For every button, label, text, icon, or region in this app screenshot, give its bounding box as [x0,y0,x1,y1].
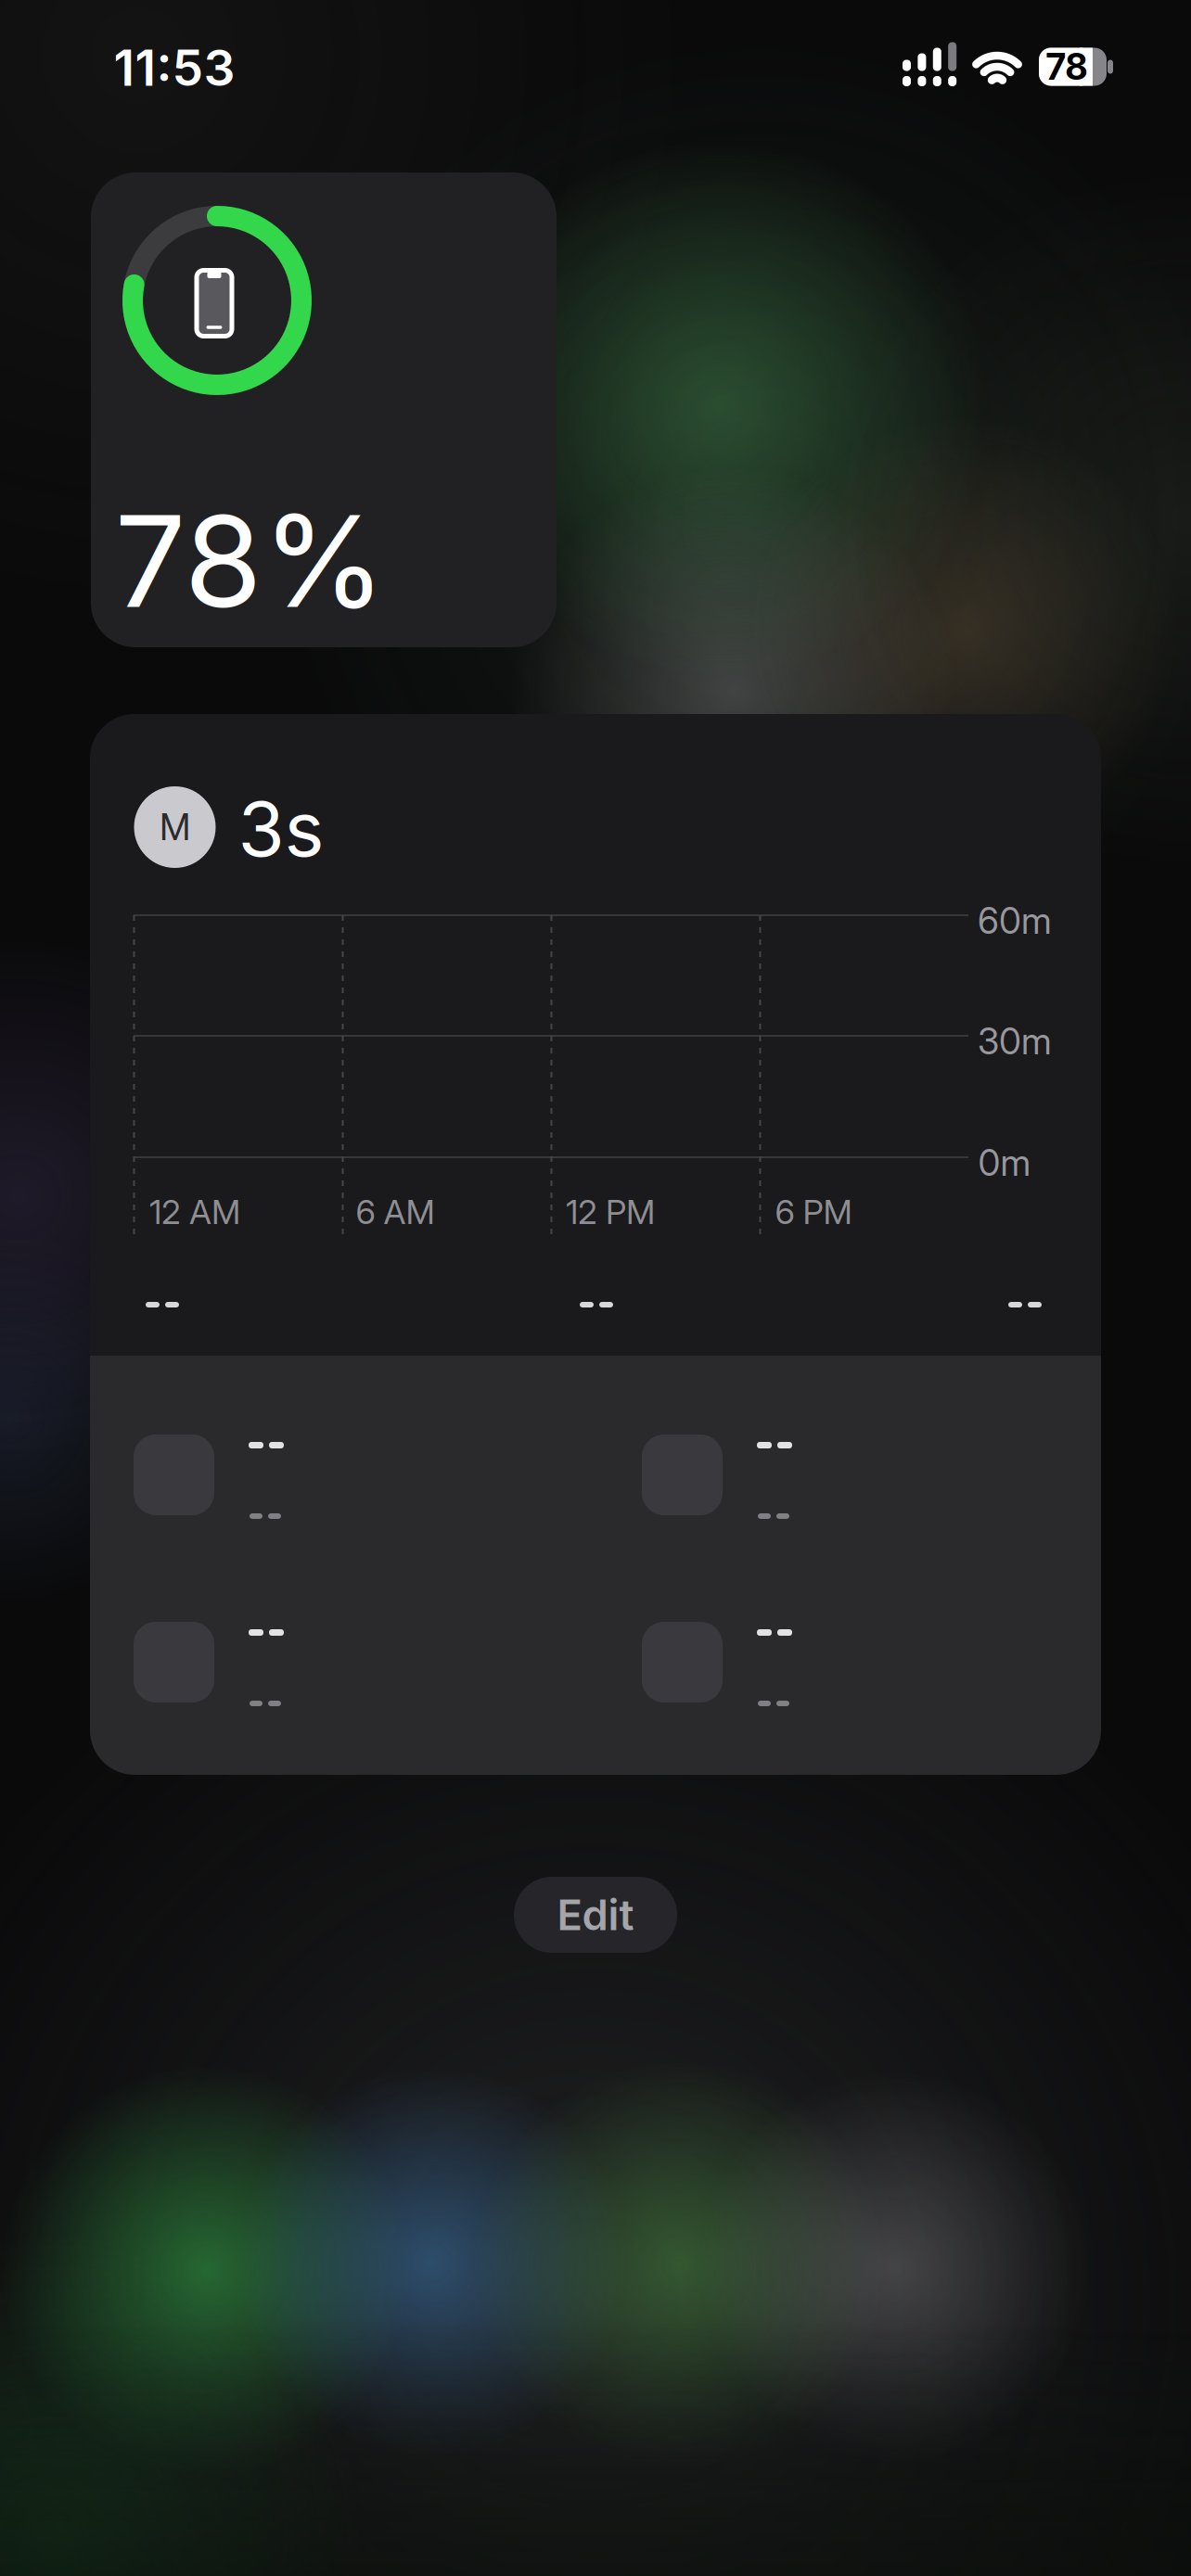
staticText: 60m [978,900,1052,942]
staticText: 0m [978,1142,1031,1184]
button[interactable]: M [90,714,1101,1775]
staticText: 6 PM [775,1192,852,1232]
staticText: 6 AM [356,1192,435,1232]
staticText: 12 AM [149,1192,240,1232]
staticText: 11:53 [114,38,235,97]
staticText: 12 PM [566,1192,655,1232]
staticText: 3s [238,784,324,873]
button[interactable]: 78% [91,172,557,647]
staticText: M [160,806,190,848]
staticText: 78 [1046,46,1088,88]
staticText: 78% [115,487,386,635]
staticText: Edit [557,1890,634,1940]
staticText: 30m [978,1020,1052,1062]
button[interactable]: Edit [514,1877,677,1953]
